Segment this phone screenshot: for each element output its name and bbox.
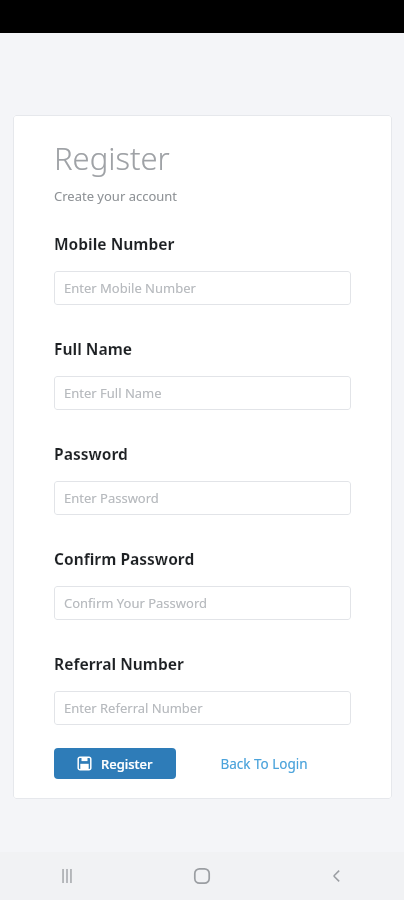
button[interactable]: Enter Mobile Number (54, 271, 351, 305)
staticText: Back To Login (220, 755, 308, 773)
staticText: Password (54, 443, 128, 464)
staticText: Mobile Number (54, 233, 175, 254)
staticText: Enter Password (64, 489, 159, 507)
staticText: Referral Number (54, 653, 184, 674)
staticText: Create your account (54, 187, 178, 205)
staticText: Enter Full Name (64, 384, 162, 402)
button[interactable]: Enter Referral Number (54, 691, 351, 725)
button[interactable]: Enter Password (54, 481, 351, 515)
staticText: Confirm Password (54, 548, 195, 569)
button[interactable]: Back (269, 852, 404, 900)
staticText: Confirm Your Password (64, 594, 208, 612)
staticText: Enter Referral Number (64, 699, 203, 717)
button[interactable]: Recents (0, 852, 134, 900)
staticText: Full Name (54, 338, 133, 359)
button[interactable]: Home (134, 852, 269, 900)
button[interactable]: Back To Login (177, 749, 351, 779)
staticText: Register (101, 755, 153, 773)
button[interactable]: Register (54, 748, 176, 779)
staticText: Enter Mobile Number (64, 279, 196, 297)
staticText: Register (54, 137, 170, 179)
button[interactable]: Enter Full Name (54, 376, 351, 410)
button[interactable]: Confirm Your Password (54, 586, 351, 620)
